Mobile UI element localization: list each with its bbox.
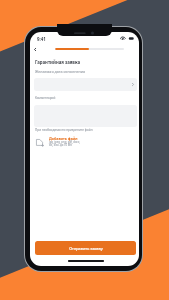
staticText: Добавить файл <box>49 136 78 141</box>
staticText: jpg, jpeg, png, pdf, docx, <box>49 140 81 144</box>
button[interactable]: Back <box>30 44 40 55</box>
staticText: Желаемая дата исполнения <box>35 69 86 74</box>
staticText: xls, xlsx. до 10 Мб <box>49 143 72 147</box>
staticText: При необходимости прикрепите файл <box>35 128 93 132</box>
staticText: 9:41 <box>37 36 46 42</box>
staticText: Гарантийная заявка <box>35 59 81 65</box>
staticText: Комментарий <box>35 96 56 100</box>
staticText: Отправить заявку <box>69 246 103 251</box>
button[interactable]: Отправить заявку <box>35 241 136 255</box>
button[interactable]: Добавить файл <box>35 134 85 152</box>
